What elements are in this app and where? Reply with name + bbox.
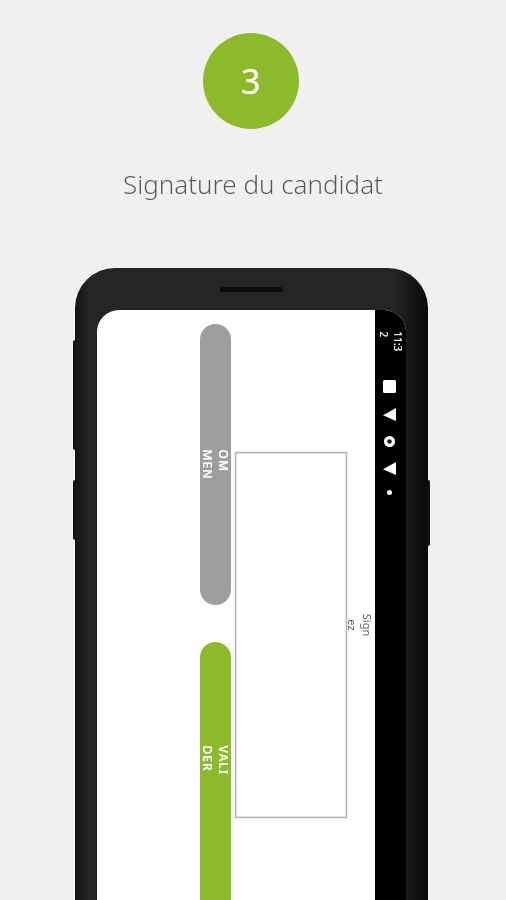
button[interactable]: Step 3 [203,33,299,129]
staticText: RECOMMENCER [200,449,231,480]
button[interactable]: VALIDER [200,642,231,900]
staticText: Signature du candidat [123,166,383,201]
staticText: 11:32 [376,331,404,356]
staticText: 3 [241,58,261,104]
staticText: Signez avec le doigt à l'intérieur du ca… [347,611,375,639]
button[interactable]: RECOMMENCER [200,324,231,605]
staticText: VALIDER [200,745,231,776]
other: Battery [383,380,396,393]
